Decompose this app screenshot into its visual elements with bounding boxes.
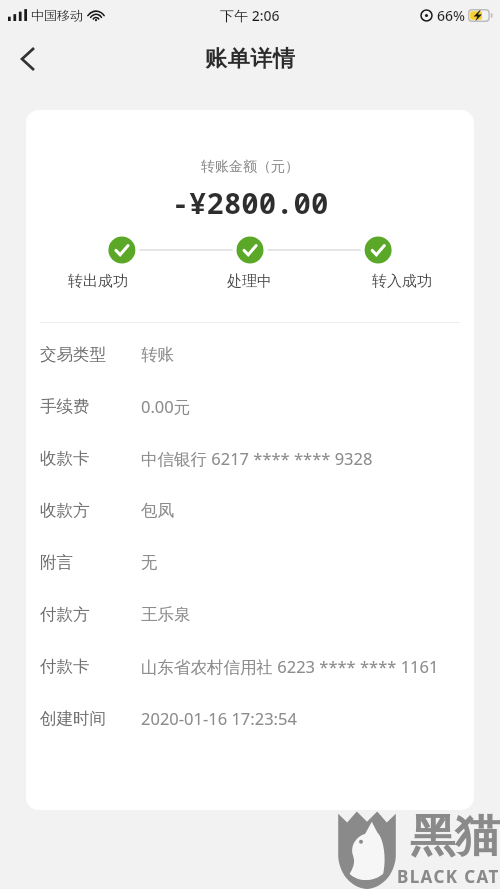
button[interactable]: 附言 [40, 536, 460, 588]
staticText: 付款方 [40, 604, 90, 625]
staticText: 转账金额（元） [26, 158, 474, 176]
staticText: 收款卡 [40, 448, 90, 469]
staticText: 0.00元 [141, 395, 460, 418]
staticText: 附言 [40, 552, 73, 573]
button[interactable]: 收款卡 [40, 432, 460, 484]
button[interactable]: 付款卡 [40, 640, 460, 692]
staticText: 转账 [141, 344, 460, 365]
staticText: 山东省农村信用社 6223 **** **** 1161 [141, 655, 460, 678]
button[interactable]: 交易类型 [40, 328, 460, 380]
staticText: 处理中 [227, 272, 272, 291]
staticText: BLACK CAT [397, 865, 500, 888]
button[interactable]: 付款方 [40, 588, 460, 640]
button[interactable]: Back [0, 32, 54, 86]
button[interactable]: 创建时间 [40, 692, 460, 744]
staticText: 中信银行 6217 **** **** 9328 [141, 447, 460, 470]
staticText: 创建时间 [40, 708, 106, 729]
staticText: 黑猫 [410, 808, 500, 865]
staticText: 无 [141, 552, 460, 573]
staticText: 手续费 [40, 396, 90, 417]
staticText: 中国移动 [31, 7, 83, 23]
staticText: 包凤 [141, 500, 460, 521]
staticText: 王乐泉 [141, 604, 460, 625]
staticText: 转入成功 [372, 272, 432, 291]
staticText: 付款卡 [40, 656, 90, 677]
button[interactable]: 收款方 [40, 484, 460, 536]
staticText: 下午 2:06 [220, 6, 280, 25]
staticText: 收款方 [40, 500, 90, 521]
staticText: 转出成功 [68, 272, 128, 291]
staticText: 交易类型 [40, 344, 106, 365]
button[interactable]: 手续费 [40, 380, 460, 432]
staticText: 账单详情 [205, 45, 296, 73]
staticText: 66% [437, 6, 465, 25]
staticText: 2020-01-16 17:23:54 [141, 707, 460, 729]
staticText: -¥2800.00 [26, 183, 474, 222]
